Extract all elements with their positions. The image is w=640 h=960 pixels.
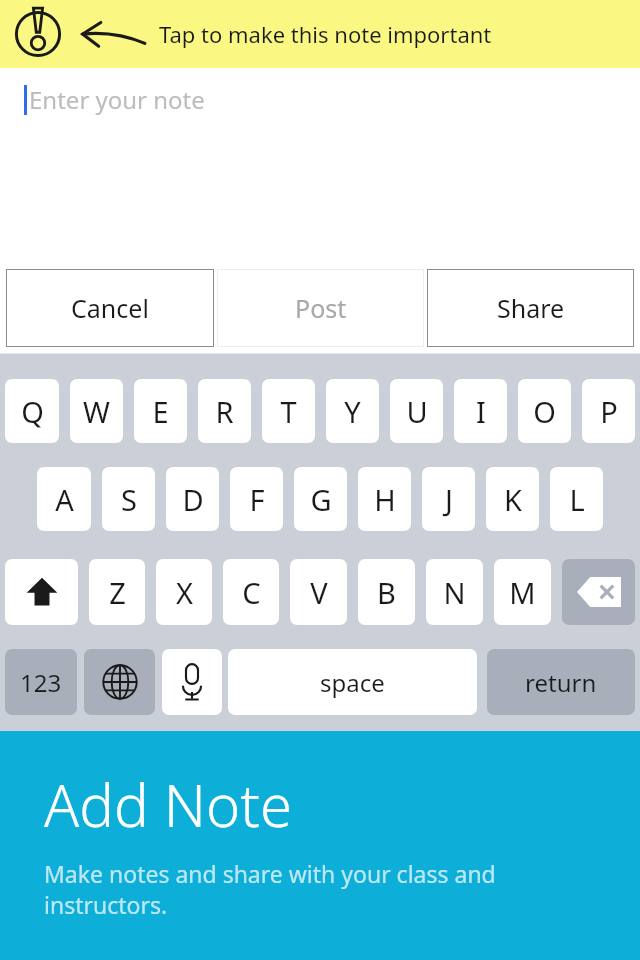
- button[interactable]: Post: [217, 269, 424, 347]
- button[interactable]: S: [102, 467, 155, 531]
- staticText: Tap to make this note important: [159, 19, 492, 49]
- staticText: F: [249, 480, 265, 519]
- button[interactable]: Mark important: [0, 0, 640, 68]
- staticText: N: [443, 573, 466, 612]
- button[interactable]: Z: [89, 559, 145, 625]
- staticText: Y: [344, 392, 361, 431]
- staticText: D: [182, 480, 204, 519]
- button[interactable]: space: [228, 649, 477, 715]
- button[interactable]: B: [358, 559, 415, 625]
- button[interactable]: W: [70, 379, 123, 443]
- staticText: W: [83, 392, 110, 431]
- staticText: B: [377, 573, 396, 612]
- button[interactable]: I: [454, 379, 507, 443]
- staticText: R: [215, 392, 234, 431]
- staticText: S: [121, 480, 137, 519]
- button[interactable]: X: [156, 559, 212, 625]
- staticText: Share: [497, 291, 565, 325]
- staticText: G: [310, 480, 332, 519]
- button[interactable]: A: [37, 467, 91, 531]
- staticText: return: [525, 666, 597, 699]
- staticText: U: [406, 392, 428, 431]
- staticText: T: [280, 392, 297, 431]
- staticText: P: [600, 392, 618, 431]
- button[interactable]: H: [358, 467, 411, 531]
- staticText: V: [310, 573, 328, 612]
- button[interactable]: G: [294, 467, 347, 531]
- staticText: Post: [295, 291, 347, 325]
- staticText: E: [152, 392, 169, 431]
- button[interactable]: 123: [5, 649, 77, 715]
- button[interactable]: D: [166, 467, 219, 531]
- staticText: H: [374, 480, 396, 519]
- button[interactable]: T: [262, 379, 315, 443]
- button[interactable]: O: [518, 379, 571, 443]
- staticText: Z: [109, 573, 126, 612]
- staticText: C: [242, 573, 261, 612]
- staticText: I: [476, 392, 486, 431]
- staticText: space: [320, 666, 385, 699]
- staticText: X: [176, 573, 193, 612]
- button[interactable]: Q: [5, 379, 59, 443]
- button[interactable]: M: [494, 559, 551, 625]
- button[interactable]: Enter your note: [0, 68, 640, 130]
- button[interactable]: R: [198, 379, 251, 443]
- button[interactable]: Shift: [5, 559, 78, 625]
- staticText: K: [504, 480, 522, 519]
- button[interactable]: Mark important: [11, 7, 65, 61]
- staticText: Cancel: [71, 291, 149, 325]
- staticText: O: [533, 392, 556, 431]
- button[interactable]: J: [422, 467, 475, 531]
- button[interactable]: U: [390, 379, 443, 443]
- button[interactable]: E: [134, 379, 187, 443]
- staticText: Add Note: [44, 765, 293, 844]
- staticText: Enter your note: [29, 83, 205, 116]
- button[interactable]: Share: [427, 269, 634, 347]
- button[interactable]: V: [290, 559, 347, 625]
- button[interactable]: L: [550, 467, 603, 531]
- staticText: Q: [21, 392, 44, 431]
- staticText: Make notes and share with your class and…: [44, 858, 600, 921]
- button[interactable]: Dictate: [162, 649, 222, 715]
- button[interactable]: Switch keyboard: [84, 649, 155, 715]
- staticText: L: [569, 480, 585, 519]
- button[interactable]: Cancel: [6, 269, 214, 347]
- button[interactable]: C: [223, 559, 279, 625]
- button[interactable]: Delete: [562, 559, 635, 625]
- staticText: M: [509, 573, 536, 612]
- button[interactable]: P: [582, 379, 635, 443]
- button[interactable]: Y: [326, 379, 379, 443]
- button[interactable]: N: [426, 559, 483, 625]
- staticText: 123: [20, 666, 62, 699]
- staticText: A: [55, 480, 74, 519]
- button[interactable]: F: [230, 467, 283, 531]
- staticText: J: [445, 480, 453, 519]
- button[interactable]: return: [487, 649, 635, 715]
- button[interactable]: K: [486, 467, 539, 531]
